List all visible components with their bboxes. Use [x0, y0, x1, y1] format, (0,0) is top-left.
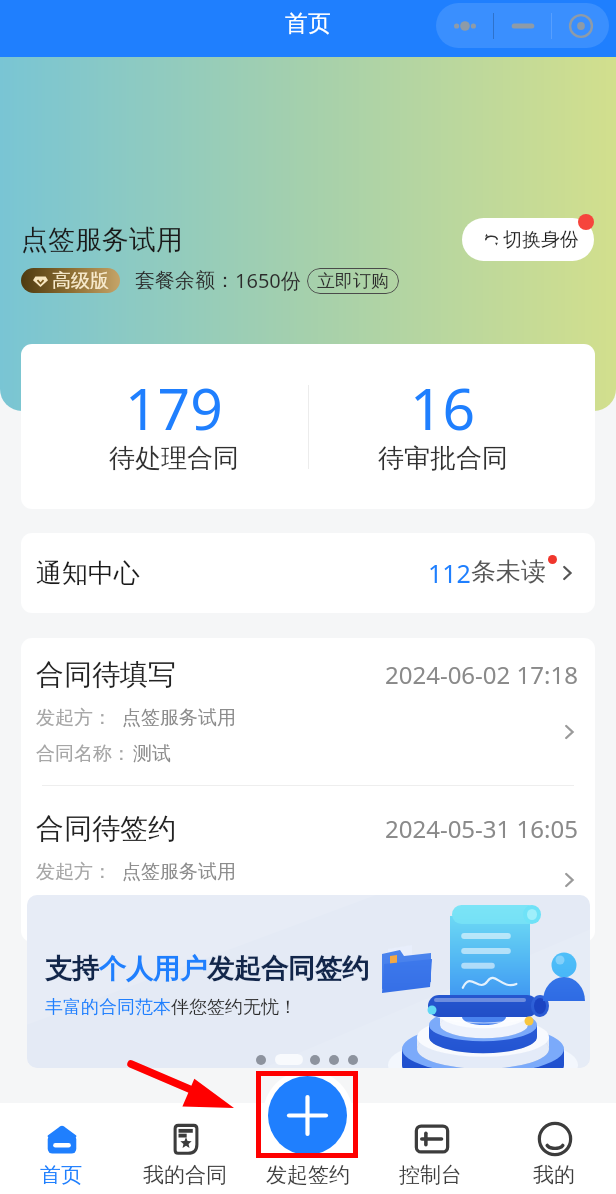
staticText: 套餐余额： [135, 268, 235, 293]
button[interactable]: 16 [308, 344, 577, 509]
button[interactable]: 首页 [0, 1103, 124, 1194]
staticText: 发起方： [36, 706, 112, 730]
staticText: 通知中心 [36, 557, 140, 590]
staticText: 丰富的合同范本 [45, 996, 171, 1019]
button[interactable]: 发起签约 [268, 1076, 347, 1155]
button[interactable]: 更多 [436, 3, 493, 48]
button[interactable]: 合同待填写 [21, 638, 595, 785]
staticText: 1650份 [235, 267, 301, 294]
staticText: 个人用户 [99, 952, 207, 986]
staticText: 我的合同 [143, 1162, 227, 1188]
staticText: 合同待填写 [36, 657, 176, 692]
button[interactable]: 支持 [27, 895, 590, 1068]
staticText: 16 [410, 369, 476, 447]
staticText: 点签服务试用 [122, 860, 236, 884]
staticText: 179 [125, 369, 223, 447]
staticText: 发起签约 [266, 1162, 350, 1188]
staticText: 高级版 [52, 269, 109, 293]
button[interactable]: 切换身份 [462, 218, 594, 261]
staticText: 支持 [45, 952, 99, 986]
button[interactable]: 我的合同 [124, 1103, 247, 1194]
button[interactable]: 合同待签约 [21, 786, 595, 937]
button[interactable]: 控制台 [370, 1103, 493, 1194]
staticText: 点签服务试用 [21, 223, 183, 257]
button[interactable]: 立即订购 [307, 268, 399, 294]
staticText: 合同待签约 [36, 811, 176, 846]
staticText: 合同名称： [36, 742, 131, 766]
staticText: 待审批合同 [378, 442, 508, 475]
staticText: 首页 [285, 9, 331, 38]
staticText: 伴您签约无忧！ [171, 996, 297, 1019]
staticText: 发起合同签约 [207, 952, 369, 986]
staticText: 我的 [533, 1162, 575, 1188]
button[interactable]: 最小化 [494, 3, 551, 48]
staticText: 切换身份 [503, 228, 579, 252]
staticText: 控制台 [399, 1162, 462, 1188]
button[interactable]: 关闭 [552, 3, 609, 48]
button[interactable]: 通知中心 [21, 533, 595, 613]
button[interactable]: 发起签约 [247, 1103, 370, 1194]
staticText: 112 [428, 556, 471, 590]
staticText: 测试 [133, 742, 171, 766]
staticText: 2024-06-02 17:18 [385, 658, 578, 691]
button[interactable]: 179 [39, 344, 308, 509]
staticText: 条未读 [471, 556, 546, 587]
button[interactable]: 我的 [493, 1103, 616, 1194]
staticText: 立即订购 [317, 270, 389, 293]
staticText: 首页 [40, 1162, 82, 1188]
staticText: 点签服务试用 [122, 706, 236, 730]
staticText: 发起方： [36, 860, 112, 884]
staticText: 待处理合同 [109, 442, 239, 475]
staticText: 2024-05-31 16:05 [385, 812, 578, 845]
